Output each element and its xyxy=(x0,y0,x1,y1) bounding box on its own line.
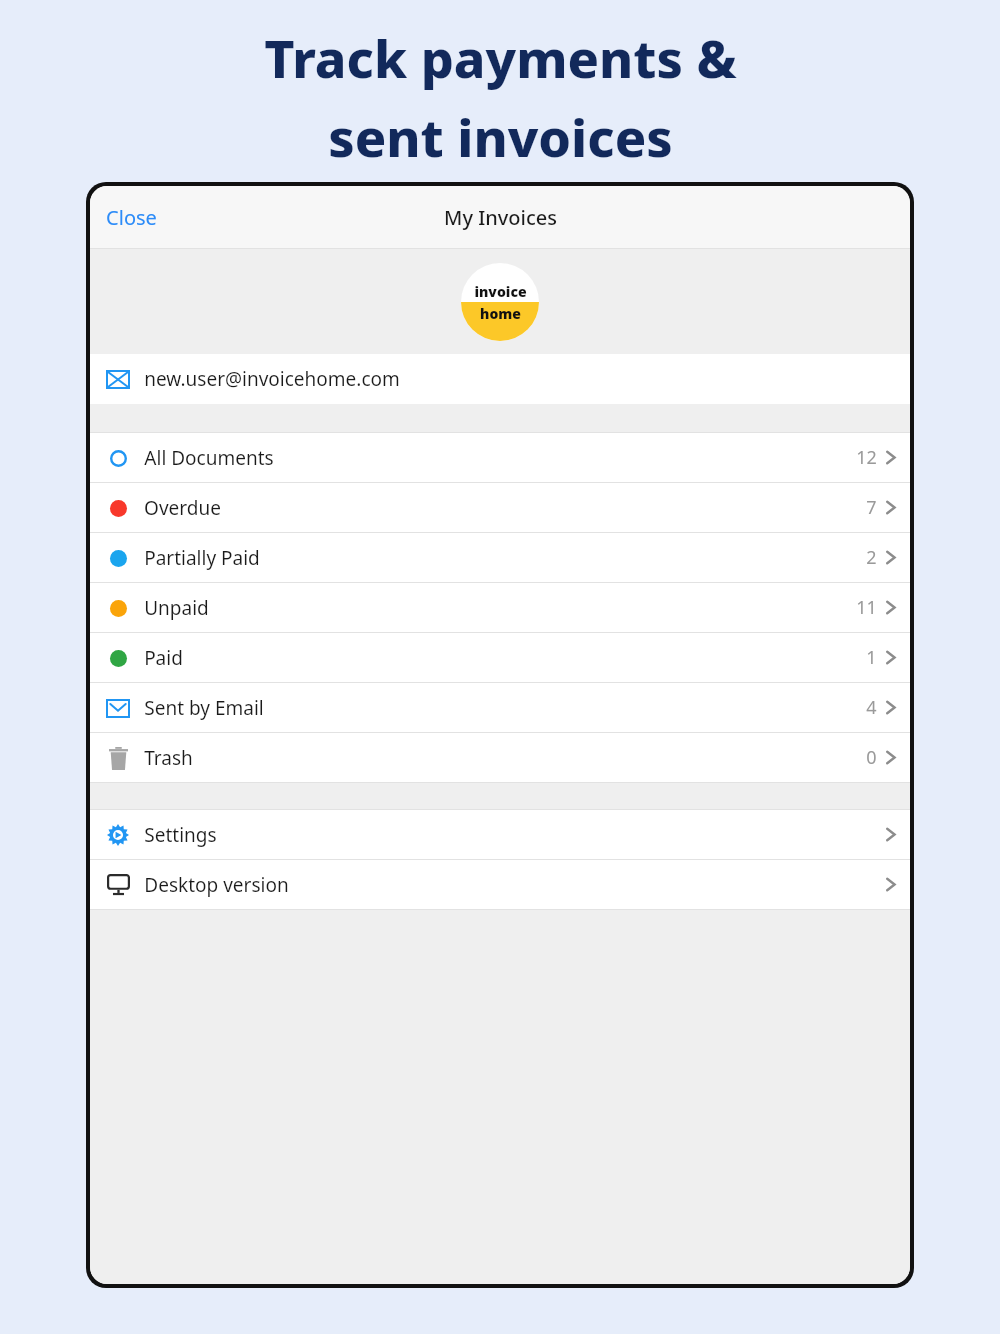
button[interactable]: Partially Paid xyxy=(90,533,910,582)
staticText: Overdue xyxy=(144,495,221,521)
button[interactable]: Desktop version xyxy=(90,860,910,909)
button[interactable]: Trash xyxy=(90,733,910,782)
staticText: Sent by Email xyxy=(144,695,264,721)
button[interactable]: Overdue xyxy=(90,483,910,532)
staticText: sent invoices xyxy=(328,101,673,172)
staticText: Trash xyxy=(144,745,193,771)
staticText: 0 xyxy=(866,745,877,770)
staticText: All Documents xyxy=(144,445,274,471)
button[interactable]: All Documents xyxy=(90,433,910,482)
button[interactable]: new.user@invoicehome.com xyxy=(90,354,910,404)
staticText: Paid xyxy=(144,645,183,671)
staticText: 12 xyxy=(856,445,877,470)
staticText: Desktop version xyxy=(144,872,289,898)
staticText: Partially Paid xyxy=(144,545,260,571)
button[interactable]: Sent by Email xyxy=(90,683,910,732)
staticText: new.user@invoicehome.com xyxy=(144,366,400,392)
button[interactable]: Paid xyxy=(90,633,910,682)
staticText: home xyxy=(480,304,521,323)
button[interactable]: Close xyxy=(98,198,165,237)
button[interactable]: Unpaid xyxy=(90,583,910,632)
button[interactable]: Settings xyxy=(90,810,910,859)
staticText: 1 xyxy=(866,645,877,670)
staticText: 4 xyxy=(866,695,877,720)
staticText: Settings xyxy=(144,822,217,848)
staticText: 2 xyxy=(866,545,877,570)
staticText: Track payments & xyxy=(264,22,737,93)
staticText: My Invoices xyxy=(444,204,557,231)
staticText: invoice xyxy=(474,282,527,301)
staticText: Unpaid xyxy=(144,595,209,621)
staticText: 11 xyxy=(856,595,877,620)
staticText: Close xyxy=(106,204,157,231)
staticText: 7 xyxy=(866,495,877,520)
